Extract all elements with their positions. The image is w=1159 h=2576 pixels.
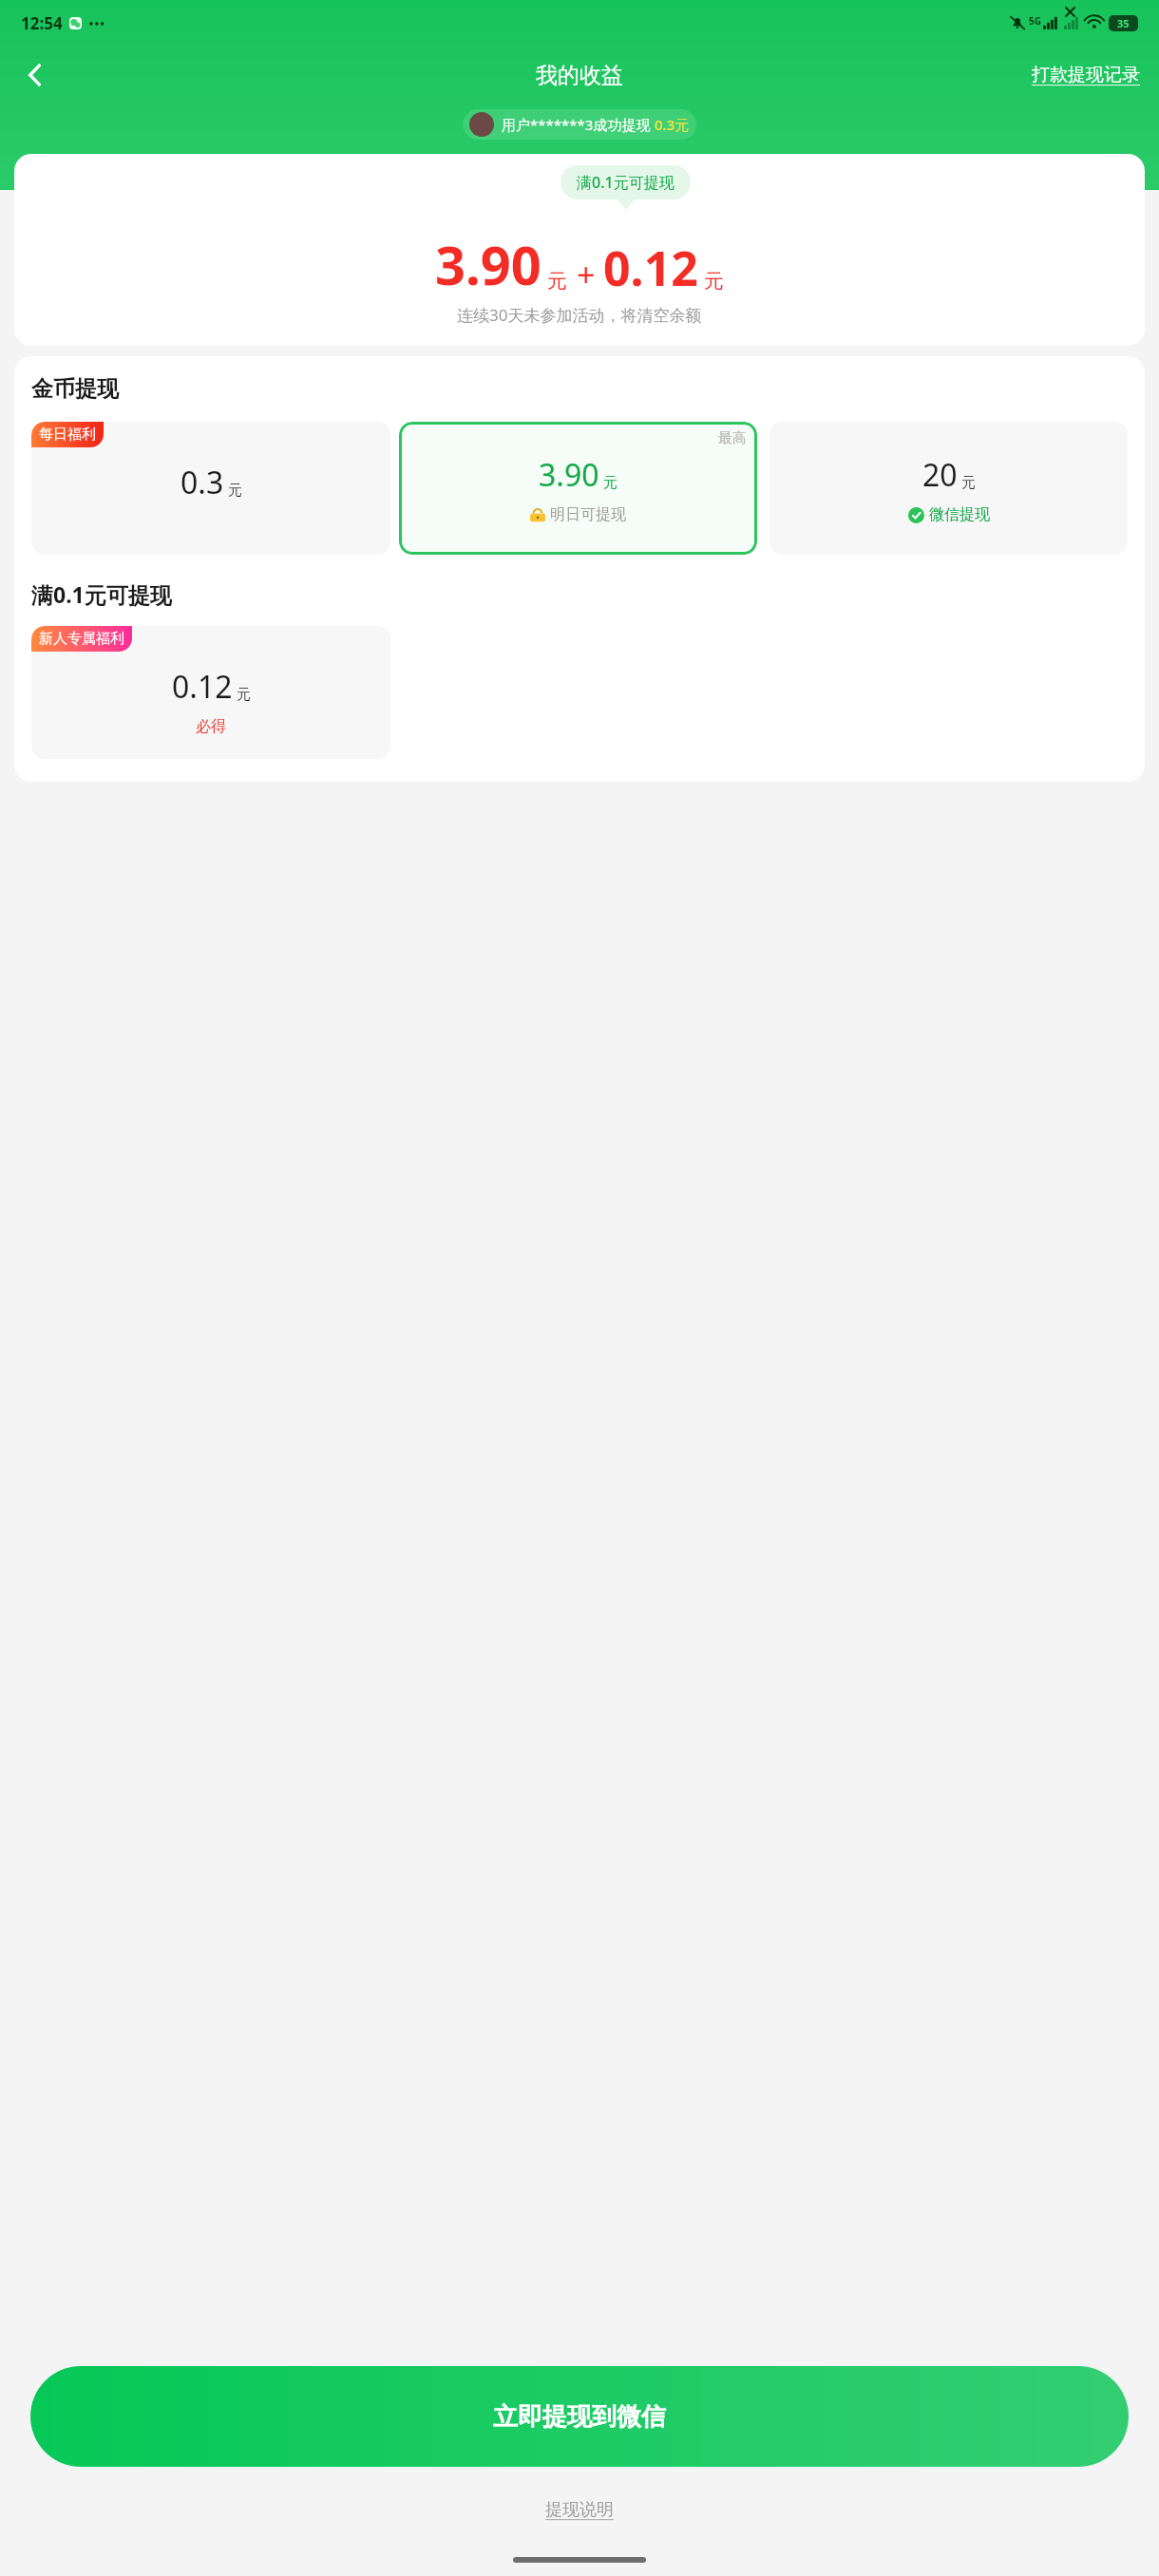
staticText: 0.3元 (655, 115, 690, 134)
staticText: 35 (1117, 16, 1130, 30)
staticText: 元 (237, 686, 251, 704)
staticText: 用户*******3成功提现 (502, 115, 655, 134)
button[interactable]: 立即提现到微信 (30, 2366, 1129, 2467)
staticText: 0.12 (172, 666, 233, 708)
staticText: 3.90 (435, 228, 541, 300)
staticText: 元 (603, 474, 617, 492)
staticText: 满0.1元可提现 (31, 579, 172, 609)
button[interactable]: 最高 (399, 422, 757, 555)
staticText: 必得 (196, 717, 226, 736)
staticText: 5G (1029, 14, 1041, 28)
staticText: 元 (704, 269, 724, 294)
staticText: 12:54 (21, 12, 63, 34)
staticText: 3.90 (539, 454, 599, 496)
staticText: + (577, 253, 596, 296)
staticText: 我的收益 (536, 62, 623, 89)
staticText: 元 (961, 474, 976, 492)
staticText: 20 (922, 454, 958, 496)
button[interactable]: 20 (769, 422, 1128, 555)
staticText: 微信提现 (929, 505, 990, 524)
staticText: 金币提现 (31, 375, 119, 403)
button[interactable]: 提现说明 (540, 2495, 619, 2525)
staticText: 连续30天未参加活动，将清空余额 (457, 304, 702, 326)
button[interactable]: Back (8, 47, 63, 103)
staticText: 打款提现记录 (1032, 64, 1140, 86)
staticText: 每日福利 (39, 426, 96, 444)
button[interactable]: 每日福利 (31, 422, 390, 555)
staticText: 立即提现到微信 (493, 2401, 666, 2433)
staticText: 满0.1元可提现 (577, 172, 674, 193)
staticText: 元 (228, 482, 242, 500)
staticText: 最高 (718, 429, 747, 447)
staticText: 提现说明 (545, 2499, 614, 2521)
staticText: 明日可提现 (550, 505, 626, 524)
staticText: 元 (547, 269, 567, 294)
button[interactable]: 新人专属福利 (31, 626, 390, 759)
button[interactable]: 打款提现记录 (1028, 56, 1144, 94)
staticText: 0.12 (603, 236, 698, 300)
staticText: 新人专属福利 (39, 630, 124, 648)
staticText: 0.3 (180, 462, 224, 503)
